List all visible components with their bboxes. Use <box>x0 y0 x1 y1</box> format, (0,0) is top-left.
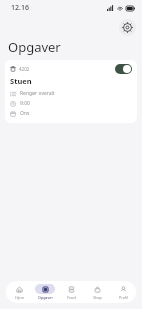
staticText: 9:00 <box>20 100 30 107</box>
staticText: Ons <box>20 110 30 117</box>
button[interactable]: Opgaver <box>32 283 58 301</box>
staticText: Stuen <box>10 76 32 86</box>
staticText: 4202 <box>19 66 30 72</box>
staticText: 12.16 <box>11 3 29 13</box>
button[interactable]: Shop <box>84 283 110 301</box>
button[interactable]: 4202 <box>5 60 137 123</box>
staticText: Opgaver <box>8 38 61 56</box>
button[interactable]: Hjem <box>6 283 32 301</box>
button[interactable]: Settings <box>119 19 136 36</box>
staticText: Rengør overalt <box>20 90 55 97</box>
staticText: Profil <box>119 295 128 300</box>
button[interactable]: Toggle task <box>115 64 132 74</box>
staticText: Shop <box>93 295 102 300</box>
staticText: Hjem <box>15 295 24 300</box>
staticText: Opgaver <box>38 295 53 300</box>
button[interactable]: Food <box>58 283 84 301</box>
button[interactable]: Profil <box>110 283 136 301</box>
staticText: Food <box>67 295 76 300</box>
